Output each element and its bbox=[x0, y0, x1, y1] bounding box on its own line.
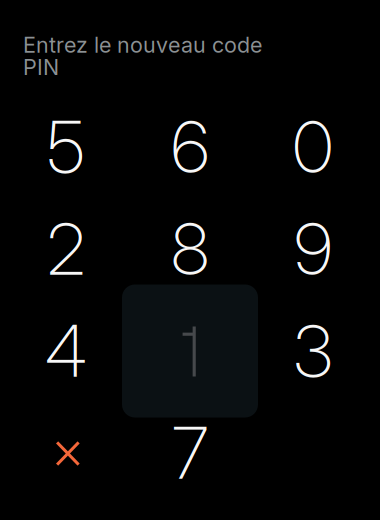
button[interactable]: 9 bbox=[251, 199, 375, 299]
button[interactable]: 4 bbox=[4, 301, 128, 401]
staticText: Entrez le nouveau code PIN bbox=[23, 32, 262, 80]
staticText: 6 bbox=[171, 104, 209, 190]
button[interactable]: 2 bbox=[4, 199, 128, 299]
staticText: 7 bbox=[172, 410, 208, 496]
button[interactable]: 0 bbox=[251, 97, 375, 197]
staticText: 2 bbox=[47, 206, 85, 292]
staticText: 0 bbox=[292, 104, 333, 190]
button[interactable]: 3 bbox=[251, 301, 375, 401]
button[interactable]: 6 bbox=[128, 97, 252, 197]
staticText: 3 bbox=[293, 308, 332, 394]
button[interactable]: 7 bbox=[128, 403, 252, 503]
staticText: 9 bbox=[294, 206, 332, 292]
button[interactable]: 5 bbox=[4, 97, 128, 197]
button[interactable]: Delete bbox=[4, 403, 128, 503]
staticText: 4 bbox=[45, 308, 87, 394]
button[interactable]: 8 bbox=[128, 199, 252, 299]
button[interactable]: 1 bbox=[128, 301, 252, 401]
staticText: 5 bbox=[47, 104, 85, 190]
staticText: 8 bbox=[171, 206, 209, 292]
